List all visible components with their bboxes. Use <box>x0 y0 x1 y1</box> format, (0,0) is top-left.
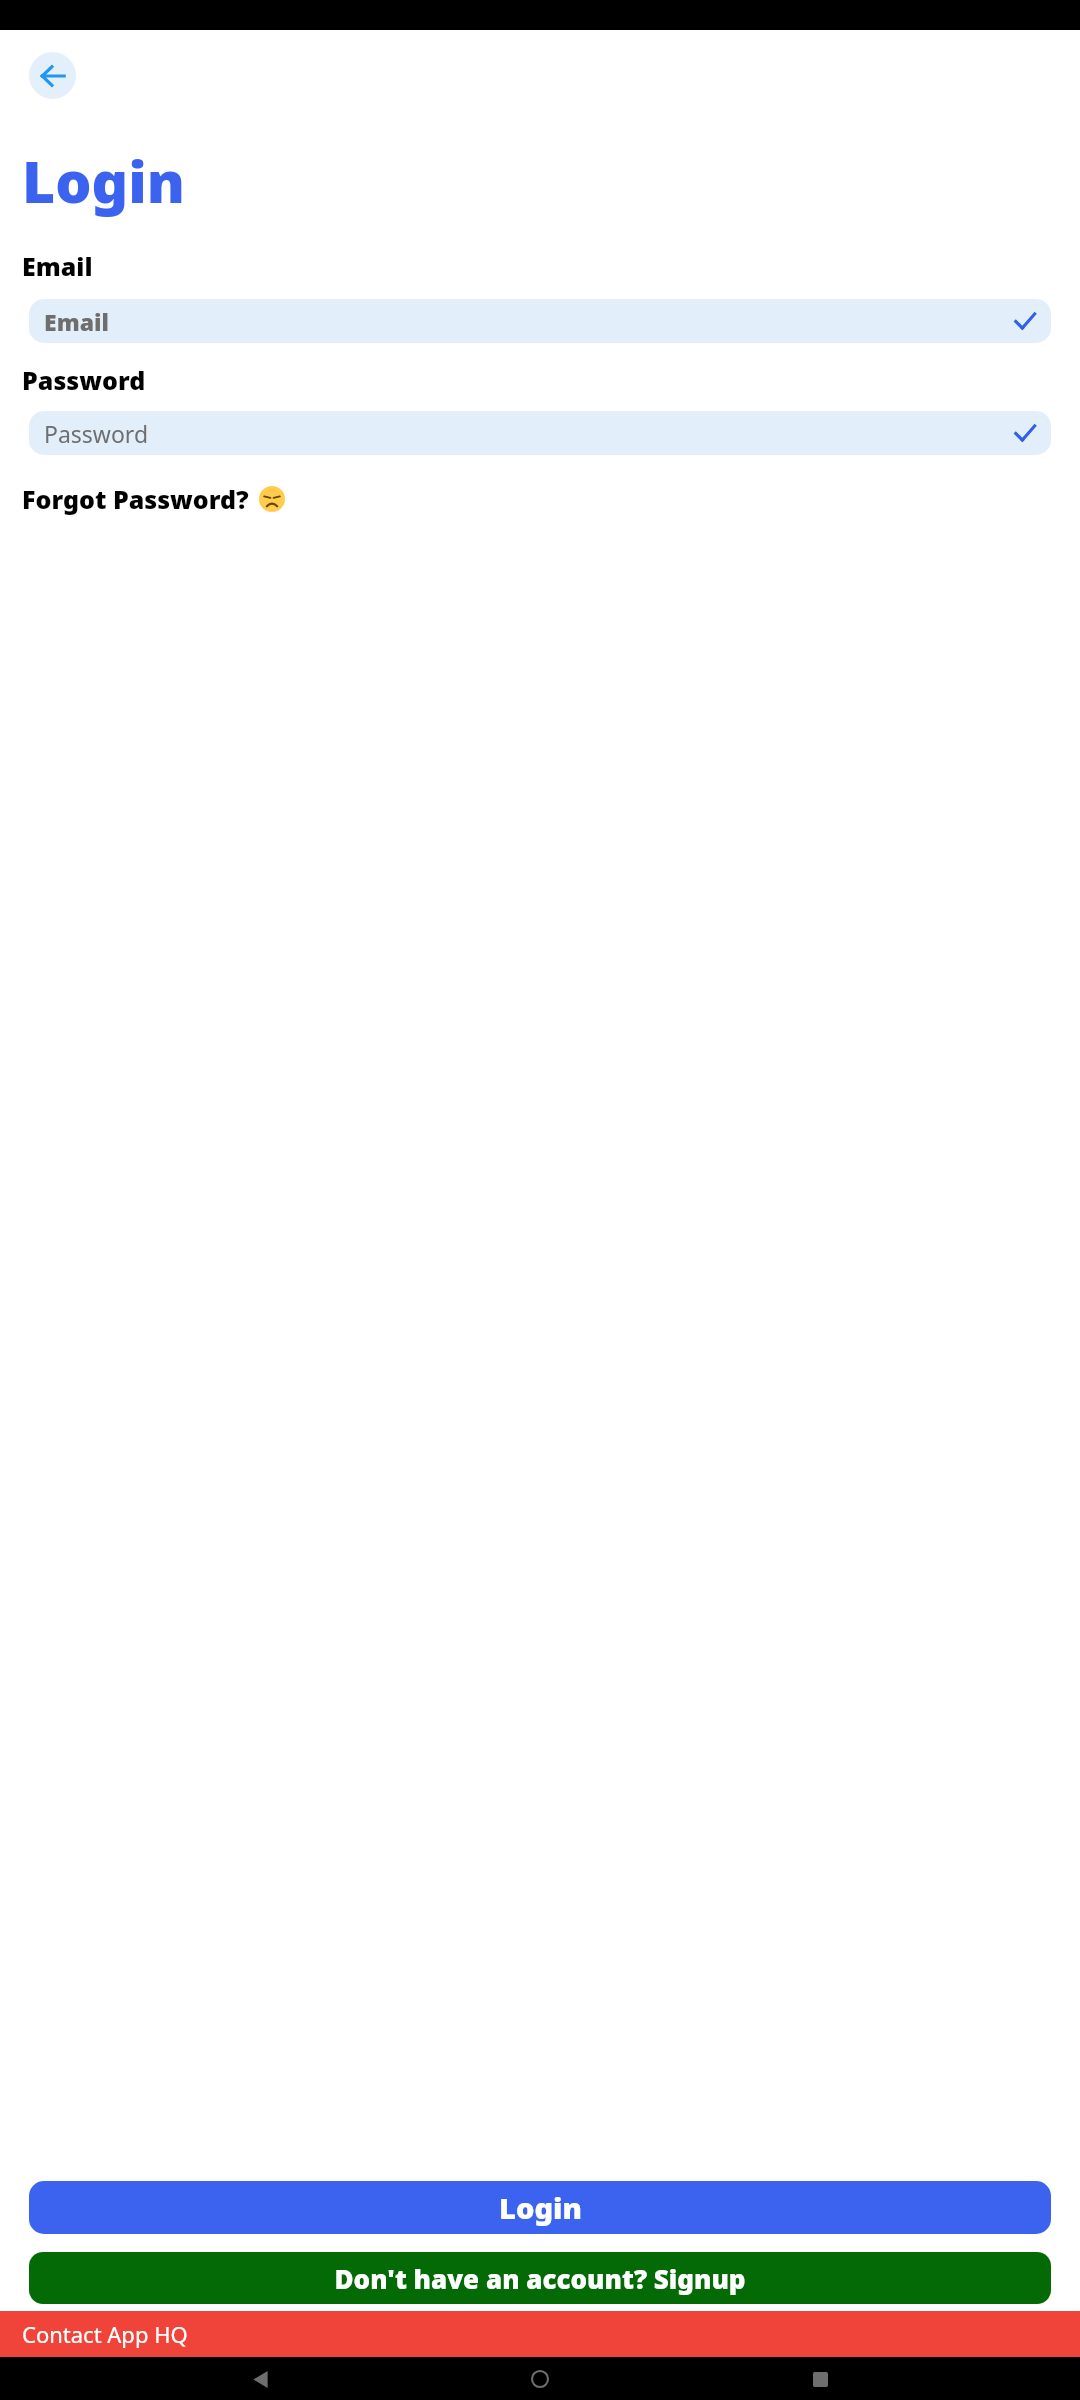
staticText: Login <box>499 2188 582 2227</box>
staticText: Contact App HQ <box>22 2319 188 2349</box>
button[interactable]: Password input <box>29 411 1051 455</box>
button[interactable]: Contact App HQ <box>0 2311 1080 2357</box>
button[interactable]: Home <box>520 2359 560 2399</box>
button[interactable]: Email input <box>29 299 1051 343</box>
button[interactable]: Back <box>29 52 76 99</box>
staticText: Password <box>44 418 149 449</box>
staticText: Email <box>44 306 109 337</box>
staticText: Forgot Password? <box>22 482 249 516</box>
button[interactable]: Login <box>29 2181 1051 2234</box>
staticText: Email <box>22 249 93 283</box>
button[interactable]: Back <box>240 2359 280 2399</box>
staticText: Login <box>22 142 185 220</box>
staticText: Password <box>22 363 146 397</box>
button[interactable]: Recent apps <box>800 2359 840 2399</box>
button[interactable]: Forgot Password? <box>22 482 285 516</box>
button[interactable]: Don't have an account? Signup <box>29 2252 1051 2304</box>
staticText: Don't have an account? Signup <box>334 2261 746 2296</box>
